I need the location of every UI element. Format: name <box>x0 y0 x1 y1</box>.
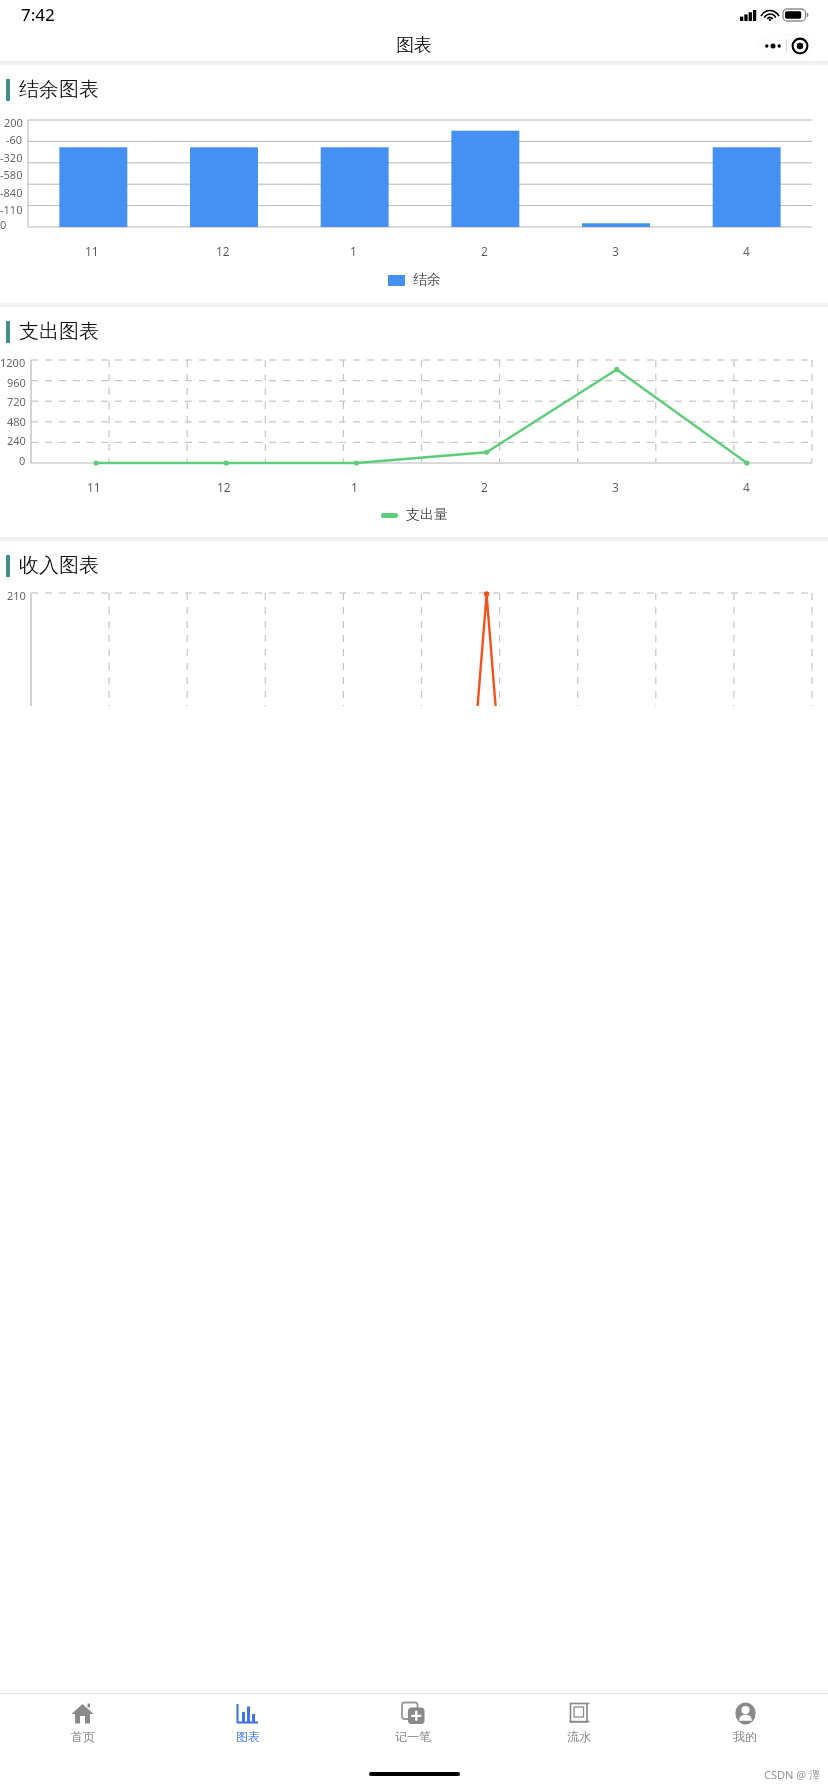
staticText: 首页 <box>71 1729 95 1744</box>
staticText: 3 <box>612 243 619 259</box>
button[interactable]: 记一笔 <box>330 1694 496 1756</box>
staticText: 结余图表 <box>19 77 99 102</box>
staticText: 0 <box>19 453 26 468</box>
staticText: 收入图表 <box>19 553 99 578</box>
staticText: 1 <box>351 479 358 495</box>
staticText: 我的 <box>733 1729 757 1744</box>
staticText: 240 <box>7 433 26 448</box>
staticText: 720 <box>7 394 26 409</box>
button[interactable]: 首页 <box>0 1694 165 1756</box>
staticText: -60 <box>6 132 23 147</box>
staticText: 3 <box>612 479 619 495</box>
staticText: 4 <box>743 479 750 495</box>
staticText: 7:42 <box>21 3 55 26</box>
staticText: 记一笔 <box>395 1729 431 1744</box>
staticText: 图表 <box>396 34 432 57</box>
staticText: 960 <box>7 375 26 390</box>
staticText: 1 <box>350 243 357 259</box>
staticText: 210 <box>7 588 26 603</box>
staticText: 2 <box>481 479 488 495</box>
button[interactable]: 我的 <box>662 1694 828 1756</box>
staticText: 支出图表 <box>19 319 99 344</box>
staticText: 11 <box>85 243 99 259</box>
staticText: -1100 <box>0 202 23 232</box>
staticText: 2 <box>481 243 488 259</box>
staticText: 流水 <box>567 1729 591 1744</box>
button[interactable]: More and close <box>757 33 815 59</box>
button[interactable]: 图表 <box>165 1694 330 1756</box>
staticText: 图表 <box>236 1729 260 1744</box>
staticText: 200 <box>4 115 23 130</box>
staticText: 12 <box>217 479 231 495</box>
staticText: -840 <box>0 185 23 200</box>
staticText: 1200 <box>0 355 26 370</box>
staticText: 4 <box>743 243 750 259</box>
staticText: 11 <box>87 479 101 495</box>
staticText: 480 <box>7 414 26 429</box>
staticText: -580 <box>0 167 23 182</box>
staticText: 结余 <box>413 271 441 289</box>
staticText: CSDN @ 澤 <box>764 1767 820 1782</box>
staticText: 12 <box>216 243 230 259</box>
staticText: -320 <box>0 150 23 165</box>
button[interactable]: 流水 <box>496 1694 662 1756</box>
staticText: 支出量 <box>406 506 448 524</box>
